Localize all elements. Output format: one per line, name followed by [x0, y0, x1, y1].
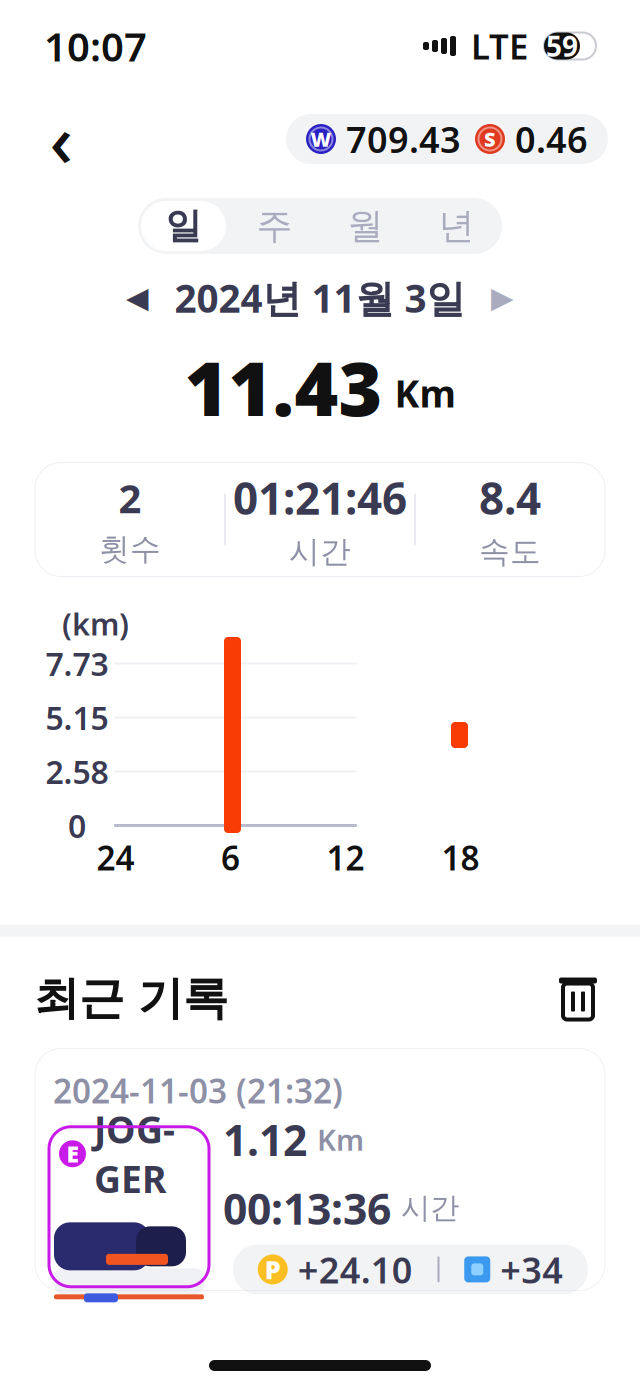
staticText: W [310, 126, 331, 152]
staticText: 5.15 [45, 696, 108, 739]
staticText: 시간 [401, 1190, 459, 1226]
staticText: 709.43 [346, 115, 461, 163]
button[interactable]: Delete records [550, 970, 606, 1026]
staticText: S [484, 126, 496, 152]
staticText: 횟수 [99, 530, 161, 568]
button[interactable]: Back [32, 110, 90, 168]
staticText: 8.4 [479, 468, 541, 527]
staticText: Km [394, 368, 455, 418]
staticText: 6 [221, 835, 240, 880]
staticText: 일 [165, 204, 201, 248]
staticText: (km) [62, 603, 129, 644]
staticText: ▶ [491, 281, 514, 314]
staticText: ◀ [126, 281, 149, 314]
staticText: 년 [438, 204, 474, 248]
staticText: 주 [256, 204, 292, 248]
button[interactable]: 월 [320, 198, 411, 254]
staticText: 12 [326, 835, 364, 880]
staticText: P [265, 1253, 281, 1286]
staticText: LTE [471, 23, 528, 69]
staticText: +24.10 [298, 1245, 413, 1293]
staticText: 시간 [289, 533, 351, 571]
staticText: 11.43 [184, 337, 382, 436]
staticText: 0 [68, 804, 86, 847]
staticText: 월 [347, 204, 383, 248]
button[interactable]: 일 [138, 198, 229, 254]
staticText: 0.46 [515, 115, 588, 163]
staticText: 18 [441, 835, 479, 880]
staticText: 2.58 [45, 750, 108, 793]
staticText: +34 [500, 1245, 563, 1293]
staticText: 1.12 [223, 1111, 307, 1168]
button[interactable]: 년 [411, 198, 502, 254]
staticText: 01:21:46 [233, 468, 407, 527]
staticText: 2 [118, 471, 141, 524]
staticText: E [66, 1139, 78, 1169]
staticText: 2024-11-03 (21:32) [53, 1068, 343, 1113]
staticText: 속도 [479, 533, 541, 571]
button[interactable]: Previous day [114, 275, 160, 321]
staticText: ‹ [49, 91, 72, 187]
staticText: JOGGER [94, 1104, 175, 1203]
staticText: 최근 기록 [34, 971, 228, 1026]
button[interactable]: 주 [229, 198, 320, 254]
staticText: 7.73 [45, 642, 108, 685]
staticText: 10:07 [44, 19, 147, 72]
staticText: 00:13:36 [223, 1180, 391, 1236]
button[interactable]: Next day [479, 275, 525, 321]
staticText: 2024년 11월 3일 [174, 272, 465, 323]
button[interactable]: 2024-11-03 (21:32) [35, 1048, 605, 1290]
staticText: Km [317, 1120, 364, 1159]
staticText: 24 [96, 835, 134, 880]
button[interactable]: W [286, 114, 608, 164]
staticText: 59 [546, 27, 578, 65]
